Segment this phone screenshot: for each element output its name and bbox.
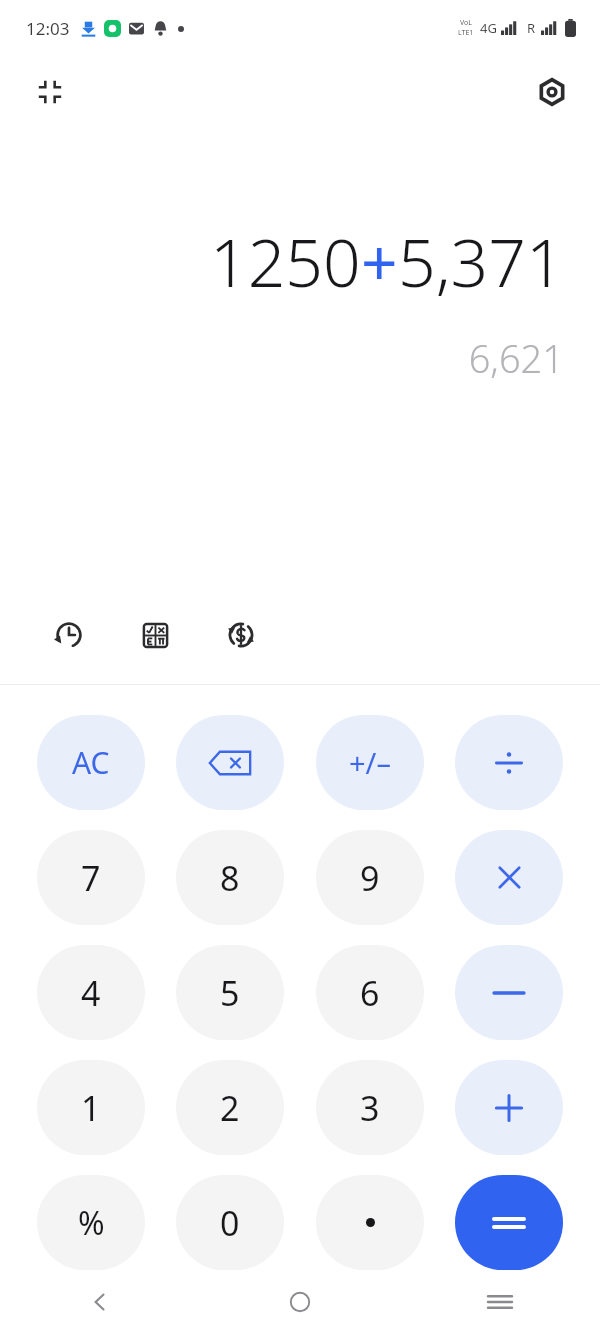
button[interactable]: 2 [176,1060,284,1155]
staticText: 5 [220,970,240,1016]
staticText: 1250 [210,216,361,306]
button[interactable]: 8 [176,830,284,925]
button[interactable]: Unit converter [214,608,268,662]
button[interactable]: Collapse [22,64,78,120]
staticText: 0 [220,1200,240,1246]
button[interactable]: Back [0,1270,200,1333]
button[interactable]: AC [37,715,145,810]
staticText: LTE1 [458,28,474,38]
button[interactable]: Equals [455,1175,563,1270]
staticText: AC [72,742,110,783]
button[interactable]: 6 [316,945,424,1040]
staticText: 4G [480,19,497,37]
button[interactable]: 0 [176,1175,284,1270]
staticText: R [527,19,536,37]
staticText: 9 [360,855,380,901]
staticText: 8 [220,855,240,901]
staticText: VoL [460,18,472,28]
button[interactable]: +/– [316,715,424,810]
button[interactable]: History [42,608,96,662]
button[interactable]: Backspace [176,715,284,810]
staticText: 12:03 [26,17,70,40]
staticText: +/– [349,743,391,782]
button[interactable]: 3 [316,1060,424,1155]
button[interactable]: 1 [37,1060,145,1155]
staticText: 3 [360,1085,380,1131]
button[interactable]: % [37,1175,145,1270]
button[interactable]: Plus [455,1060,563,1155]
button[interactable]: Scientific calculator [128,608,182,662]
staticText: 1 [81,1085,101,1131]
staticText: 6 [360,970,380,1016]
button[interactable]: Minus [455,945,563,1040]
staticText: 2 [220,1085,240,1131]
button[interactable]: Settings [524,64,580,120]
button[interactable]: Divide [455,715,563,810]
staticText: + [361,218,398,305]
button[interactable]: 9 [316,830,424,925]
staticText: 6,621 [0,332,564,384]
button[interactable]: Decimal point [316,1175,424,1270]
button[interactable]: 7 [37,830,145,925]
button[interactable]: Recent apps [400,1270,600,1333]
button[interactable]: 4 [37,945,145,1040]
staticText: 4 [81,970,101,1016]
button[interactable]: 5 [176,945,284,1040]
button[interactable]: Home [200,1270,400,1333]
button[interactable]: Multiply [455,830,563,925]
staticText: 5,371 [398,216,564,306]
staticText: 7 [81,855,101,901]
staticText: % [78,1201,105,1245]
